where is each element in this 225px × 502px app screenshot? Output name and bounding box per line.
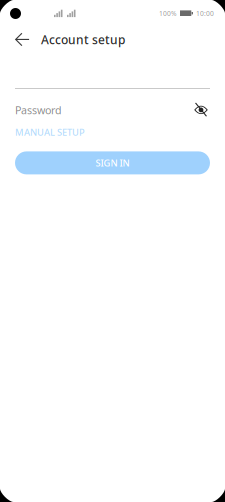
button[interactable]: Email address [0,63,225,89]
staticText: Password [15,103,62,117]
button[interactable]: SIGN IN [15,151,210,174]
staticText: MANUAL SETUP [15,126,85,138]
staticText: SIGN IN [95,157,129,169]
button[interactable]: Show password [192,103,210,117]
staticText: Account setup [41,31,125,47]
button[interactable]: Back [11,28,33,50]
staticText: 100% [159,9,177,18]
button[interactable]: Password [15,103,62,117]
button[interactable]: MANUAL SETUP [15,126,85,138]
staticText: 10:00 [196,9,214,18]
